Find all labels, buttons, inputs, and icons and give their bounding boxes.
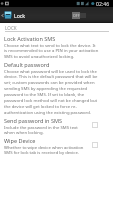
button[interactable]: Send password in SMS bbox=[0, 116, 113, 136]
button[interactable]: Toggle lock bbox=[72, 12, 86, 19]
staticText: Whether to wipe device when activation S… bbox=[4, 144, 89, 156]
staticText: Default password bbox=[4, 61, 50, 68]
button[interactable]: Navigate up bbox=[0, 7, 4, 23]
staticText: Lock Activation SMS bbox=[4, 35, 56, 42]
staticText: Include the password in the SMS text whe… bbox=[4, 124, 89, 136]
staticText: Send password in SMS bbox=[4, 117, 62, 124]
button[interactable]: Default password bbox=[0, 60, 113, 116]
staticText: Choose what text to send to lock the dev… bbox=[4, 42, 99, 60]
staticText: 02:46 bbox=[96, 0, 110, 7]
staticText: Wipe Device bbox=[4, 137, 36, 144]
staticText: Lock bbox=[14, 12, 26, 19]
staticText: OFF bbox=[73, 13, 80, 18]
staticText: LOCK bbox=[5, 25, 17, 31]
staticText: Choose what password will be used to loc… bbox=[4, 68, 99, 116]
button[interactable]: Lock Activation SMS bbox=[0, 32, 113, 60]
button[interactable]: Wipe Device bbox=[0, 136, 113, 156]
